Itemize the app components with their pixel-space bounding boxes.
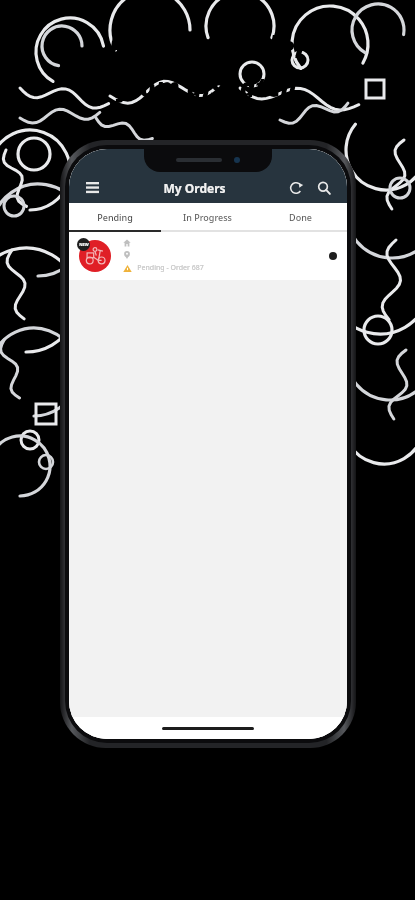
staticText: Done <box>289 211 312 223</box>
staticText: Pending - Order 687 <box>137 263 204 273</box>
button[interactable]: Search <box>313 177 335 199</box>
button[interactable]: Done <box>254 203 347 230</box>
button[interactable]: Refresh <box>285 177 307 199</box>
button[interactable]: More options <box>329 252 337 260</box>
staticText: Receive order <box>108 26 308 67</box>
staticText: My Orders <box>163 180 226 196</box>
staticText: NEW <box>79 242 89 247</box>
staticText: Pending <box>97 211 133 223</box>
button[interactable]: In Progress <box>161 203 254 230</box>
button[interactable]: Menu <box>81 177 103 199</box>
button[interactable]: NEW <box>69 232 347 280</box>
button[interactable]: Pending <box>69 203 161 230</box>
staticText: In Progress <box>183 211 232 223</box>
staticText: from dispatch <box>118 69 297 104</box>
